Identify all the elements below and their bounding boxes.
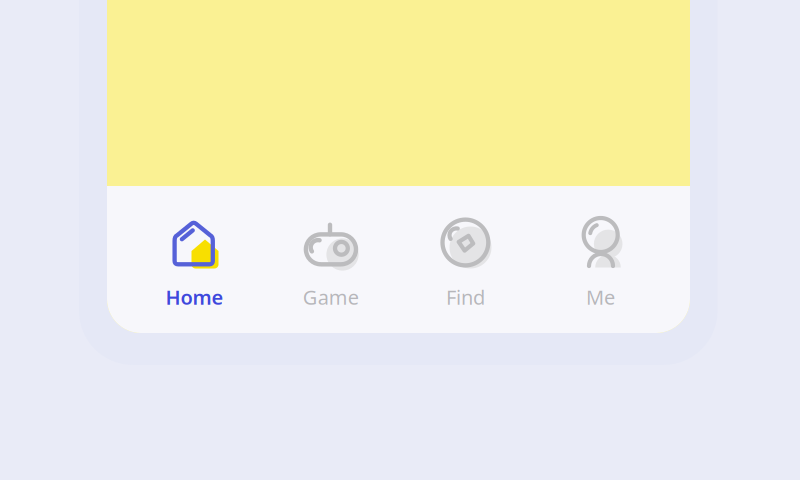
button[interactable]: Me	[533, 211, 668, 321]
staticText: Game	[303, 284, 359, 310]
staticText: Me	[586, 284, 615, 310]
button[interactable]: Game	[263, 211, 398, 321]
button[interactable]: Home	[127, 211, 262, 321]
staticText: Find	[446, 284, 485, 310]
staticText: Home	[165, 284, 223, 310]
button[interactable]: Find	[398, 211, 533, 321]
